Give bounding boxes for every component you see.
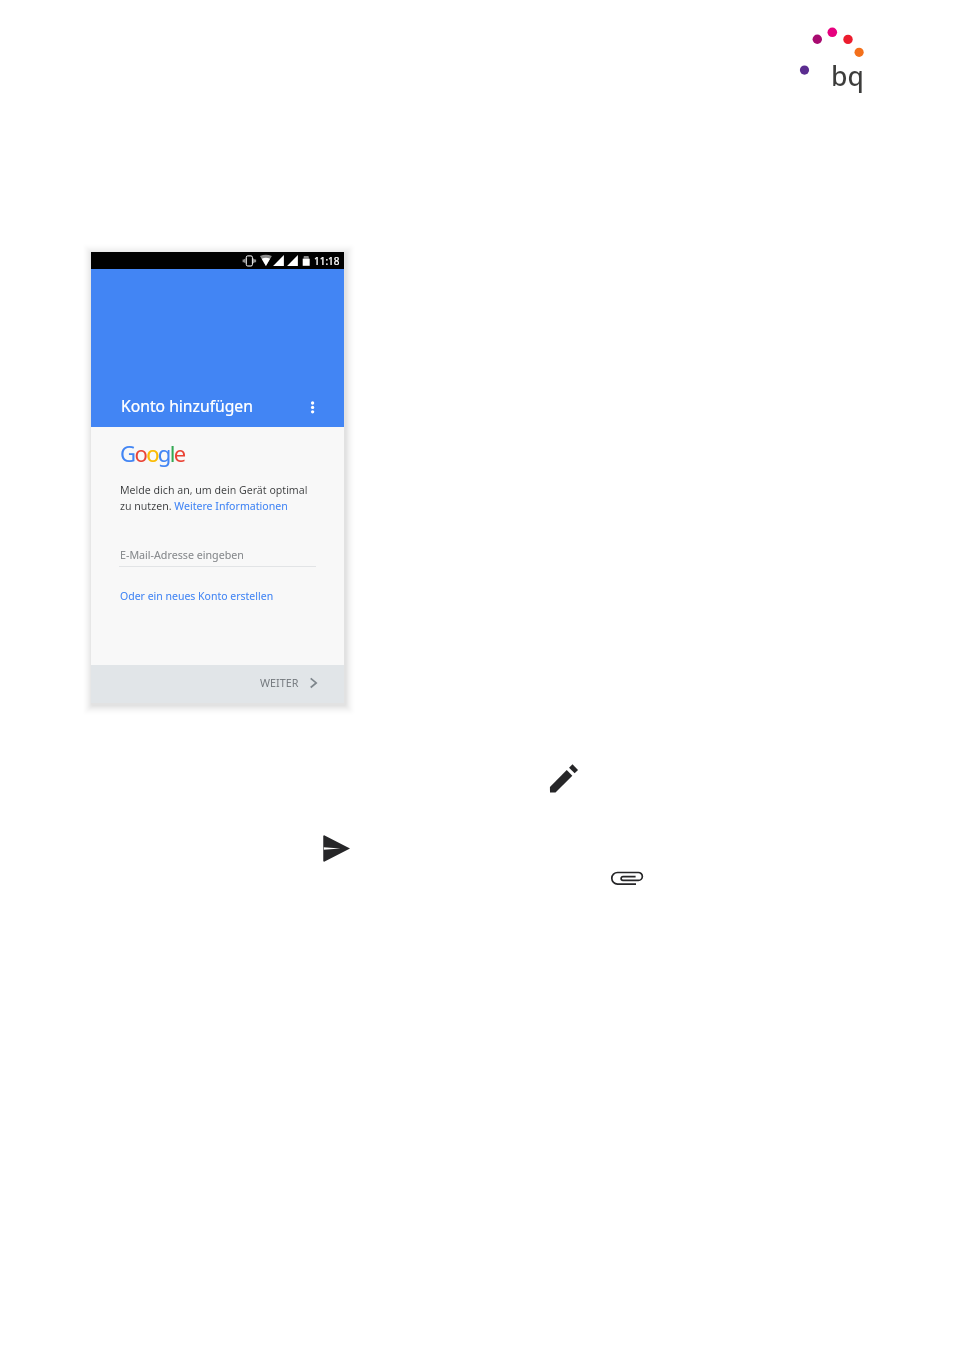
button[interactable]: Attach file: [608, 868, 646, 890]
staticText: WEITER: [260, 675, 299, 690]
staticText: Konto hinzufügen: [121, 395, 253, 416]
staticText: bq: [831, 58, 864, 94]
button[interactable]: E-Mail-Adresse eingeben: [120, 548, 317, 563]
button[interactable]: Edit: [547, 763, 581, 797]
other: bq logo: [800, 24, 870, 96]
button[interactable]: More options: [294, 389, 328, 423]
button[interactable]: Send: [322, 833, 352, 864]
staticText: 11:18: [314, 254, 340, 268]
staticText: Melde dich an, um dein Gerät optimal zu …: [120, 483, 308, 513]
button[interactable]: WEITER: [252, 669, 326, 696]
staticText: Google: [120, 438, 185, 468]
button[interactable]: Oder ein neues Konto erstellen: [120, 589, 274, 603]
